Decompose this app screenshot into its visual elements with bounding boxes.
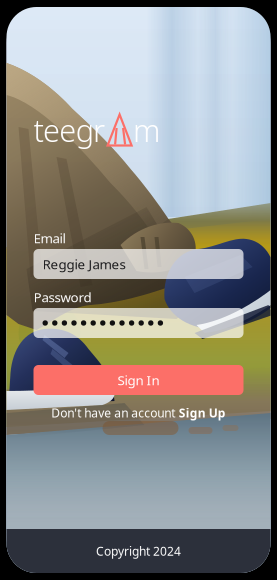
staticText: Copyright 2024: [96, 543, 181, 559]
staticText: teegr: [33, 110, 105, 150]
staticText: m: [133, 110, 160, 150]
staticText: Don't have an account: [51, 405, 175, 421]
staticText: Sign Up: [179, 405, 226, 421]
staticText: Sign In: [117, 371, 159, 389]
button[interactable]: Don't have an account: [33, 405, 243, 421]
staticText: Password: [33, 288, 91, 306]
staticText: Email: [33, 229, 65, 247]
button[interactable]: Sign In: [33, 365, 243, 395]
staticText: Reggie James: [42, 255, 125, 273]
